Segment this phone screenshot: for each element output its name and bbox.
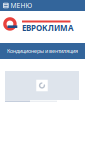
staticText: Кондиционеры и вентиляция [7, 47, 78, 55]
button[interactable]: МЕНЮ [0, 0, 85, 11]
staticText: ЕВРОКЛИМА [22, 23, 74, 33]
staticText: МЕНЮ [11, 1, 33, 10]
